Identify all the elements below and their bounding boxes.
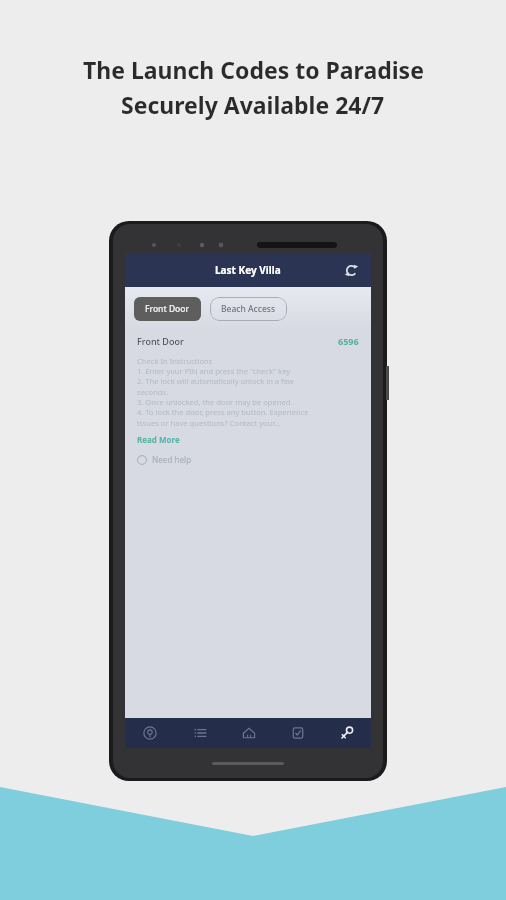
button[interactable]: Read More	[137, 434, 180, 445]
button[interactable]: Refresh	[341, 260, 361, 280]
staticText: Beach Access	[221, 303, 276, 315]
button[interactable]: Documents	[273, 718, 322, 748]
staticText: 6596	[338, 335, 359, 347]
staticText: Read More	[137, 434, 180, 445]
staticText: Front Door	[145, 303, 190, 315]
staticText: The Launch Codes to Paradise	[83, 54, 424, 85]
button[interactable]: Location	[125, 718, 175, 748]
staticText: 3. Once unlocked, the door may be opened…	[137, 397, 293, 407]
staticText: 2. The lock will automatically unlock in…	[137, 376, 294, 397]
button[interactable]: Keys	[322, 718, 371, 748]
staticText: Securely Available 24/7	[121, 89, 385, 120]
button[interactable]: Front Door	[134, 297, 201, 321]
button[interactable]: Home	[224, 718, 273, 748]
staticText: 1. Enter your PIN and press the "check" …	[137, 366, 291, 376]
staticText: Need help	[152, 454, 192, 465]
button[interactable]: List	[175, 718, 224, 748]
button[interactable]: Beach Access	[210, 297, 287, 321]
staticText: Front Door	[137, 335, 184, 347]
staticText: Check In Instructions	[137, 356, 213, 366]
staticText: 4. To lock the door, press any button. E…	[137, 407, 309, 428]
button[interactable]: Need help	[137, 454, 192, 465]
staticText: Last Key Villa	[215, 263, 281, 277]
